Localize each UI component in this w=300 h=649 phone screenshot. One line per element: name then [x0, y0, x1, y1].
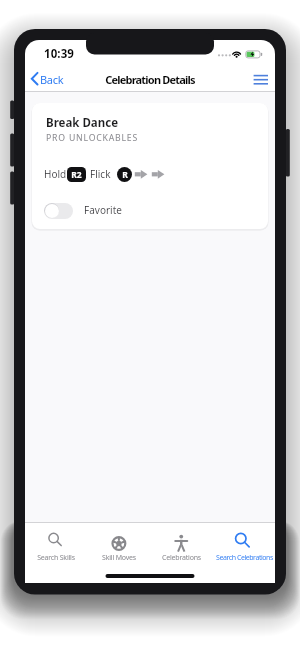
button[interactable] [146, 524, 216, 582]
button[interactable]: Back [28, 64, 70, 90]
staticText: R2 [71, 169, 82, 181]
button[interactable] [84, 524, 154, 582]
staticText: PRO UNLOCKABLES [46, 132, 139, 144]
staticText: Search Skills [37, 553, 75, 563]
staticText: Favorite [84, 203, 122, 217]
staticText: Skill Moves [102, 553, 136, 563]
staticText: Break Dance [46, 115, 119, 131]
button[interactable] [209, 524, 279, 582]
staticText: Search Celebrations [216, 553, 273, 563]
staticText: Celebrations [162, 553, 201, 563]
staticText: Back [40, 72, 64, 87]
button[interactable] [248, 66, 274, 90]
staticText: Celebration Details [105, 72, 195, 87]
staticText: Flick [90, 167, 111, 181]
staticText: Hold [44, 167, 67, 181]
staticText: 10:39 [44, 46, 75, 62]
button[interactable] [21, 524, 91, 582]
button[interactable] [44, 203, 73, 219]
staticText: R [122, 169, 128, 181]
